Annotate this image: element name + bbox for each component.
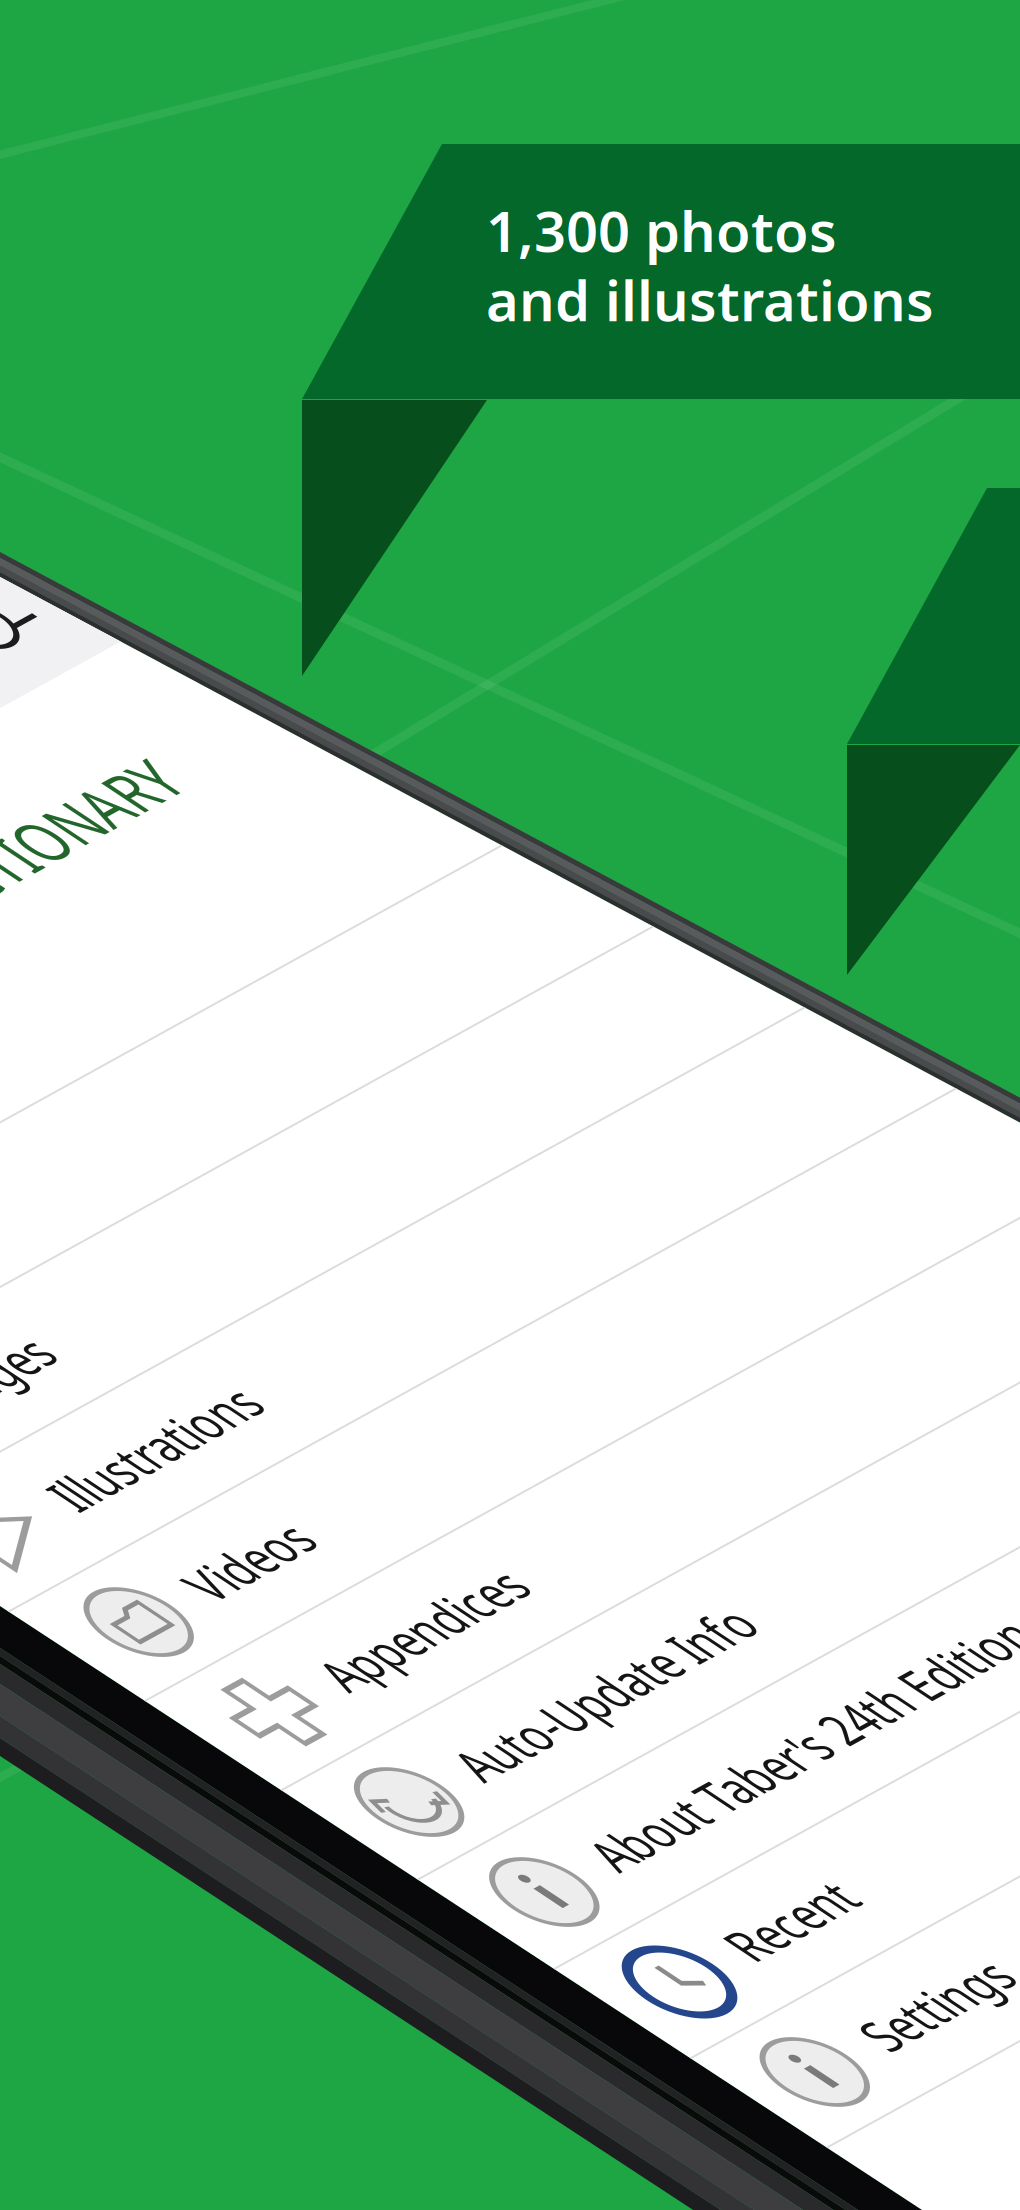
button[interactable]: Illustrations bbox=[0, 257, 760, 301]
button[interactable]: Settings bbox=[0, 521, 760, 565]
button[interactable]: Videos bbox=[0, 301, 760, 345]
button[interactable]: Appendices bbox=[0, 345, 760, 389]
staticText: About Taber's 24th Edition bbox=[232, 444, 431, 465]
button[interactable]: Notes bbox=[0, 169, 760, 213]
button[interactable]: Favorites bbox=[0, 125, 760, 169]
button[interactable]: Images bbox=[0, 213, 760, 257]
staticText: Auto-Update Info bbox=[232, 400, 364, 421]
button[interactable]: Search bbox=[180, 4, 580, 54]
staticText: Appendices bbox=[232, 356, 320, 377]
staticText: and illustrations bbox=[486, 262, 934, 337]
button[interactable]: Recent bbox=[0, 477, 760, 521]
staticText: 1,300 photos bbox=[486, 193, 837, 267]
button[interactable]: About Taber's 24th Edition bbox=[0, 433, 760, 477]
button[interactable]: Auto-Update Info bbox=[0, 389, 760, 433]
